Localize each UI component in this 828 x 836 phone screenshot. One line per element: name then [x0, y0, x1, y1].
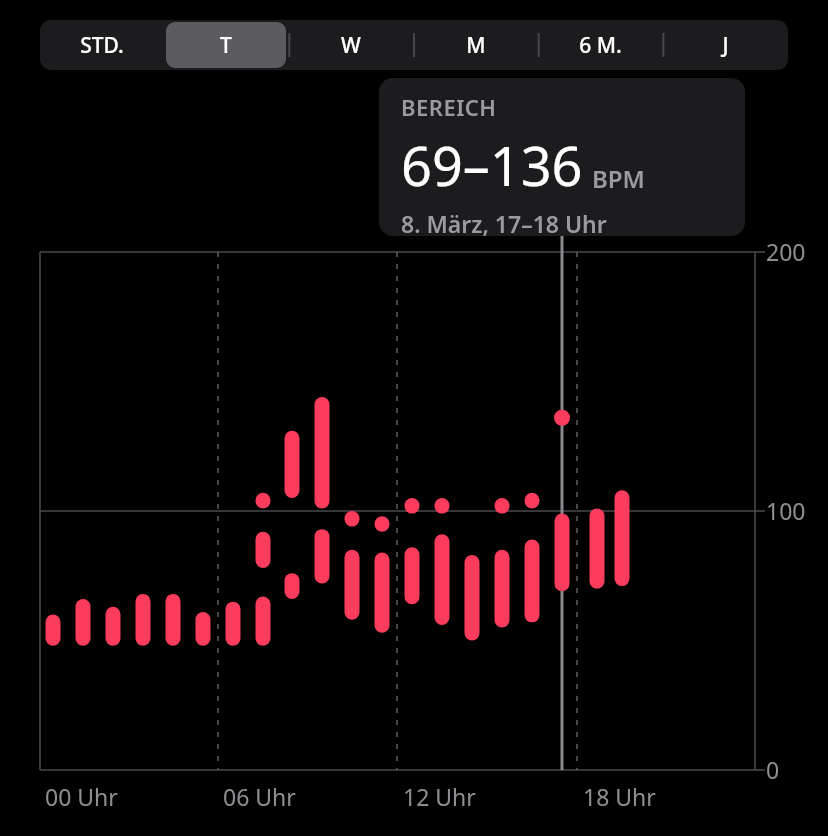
staticText: 100: [766, 495, 806, 526]
staticText: 18 Uhr: [583, 781, 656, 812]
button[interactable]: W: [290, 22, 411, 68]
staticText: M: [466, 31, 486, 60]
staticText: 00 Uhr: [45, 781, 118, 812]
staticText: 12 Uhr: [403, 781, 476, 812]
staticText: 8. März, 17–18 Uhr: [401, 208, 607, 236]
staticText: BPM: [592, 162, 645, 195]
button[interactable]: STD.: [42, 22, 162, 68]
staticText: 69–136: [401, 128, 583, 202]
button[interactable]: T: [166, 22, 286, 68]
button[interactable]: BEREICH: [379, 78, 745, 236]
staticText: W: [341, 31, 361, 60]
staticText: 06 Uhr: [223, 781, 296, 812]
button[interactable]: 6 M.: [540, 22, 661, 68]
staticText: 6 M.: [579, 31, 622, 60]
staticText: 0: [766, 754, 780, 785]
staticText: 200: [766, 236, 806, 267]
button[interactable]: J: [665, 22, 786, 68]
button[interactable]: M: [415, 22, 536, 68]
staticText: T: [220, 31, 232, 60]
staticText: J: [722, 31, 729, 60]
staticText: BEREICH: [401, 92, 497, 122]
staticText: STD.: [80, 31, 124, 60]
